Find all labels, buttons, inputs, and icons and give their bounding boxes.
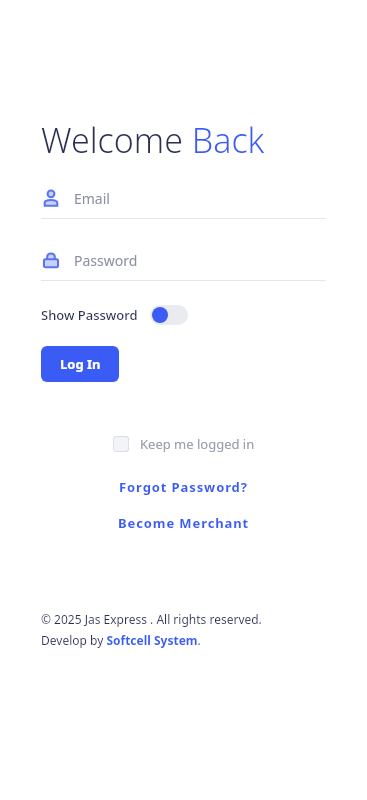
staticText: Email [74, 189, 110, 208]
button[interactable]: Forgot Password? [113, 475, 254, 499]
staticText: Develop by Softcell System. [41, 632, 201, 648]
staticText: Password [74, 251, 138, 270]
button[interactable]: Keep me logged in [41, 435, 326, 453]
other: Password [42, 251, 60, 269]
staticText: Keep me logged in [140, 435, 255, 453]
button[interactable]: Log In [41, 346, 119, 382]
button[interactable]: Become Merchant [112, 511, 256, 535]
staticText: Welcome Back [41, 117, 265, 163]
staticText: Become Merchant [118, 514, 250, 532]
button[interactable]: Password [41, 246, 326, 281]
staticText: Forgot Password? [119, 478, 248, 496]
other: Email [42, 189, 60, 207]
staticText: Log In [60, 355, 101, 373]
button[interactable]: Email [41, 184, 326, 219]
staticText: © 2025 Jas Express . All rights reserved… [41, 611, 262, 627]
button[interactable]: Show Password [41, 301, 188, 329]
staticText: Show Password [41, 306, 138, 324]
